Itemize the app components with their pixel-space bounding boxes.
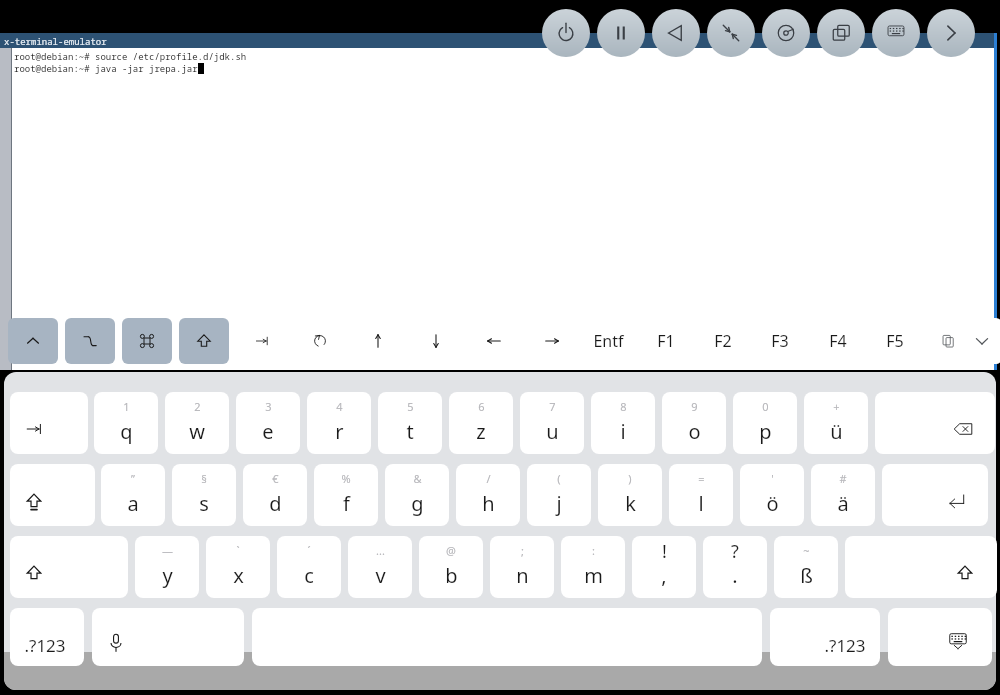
button[interactable]: F3 bbox=[754, 318, 806, 364]
button[interactable]: 0 bbox=[733, 392, 797, 454]
staticText: , bbox=[661, 562, 667, 589]
staticText: 8 bbox=[620, 399, 627, 414]
button[interactable]: % bbox=[314, 464, 378, 526]
button[interactable]: # bbox=[811, 464, 875, 526]
button[interactable]: 1 bbox=[94, 392, 158, 454]
button[interactable]: Hide keyboard bbox=[888, 608, 992, 666]
button[interactable]: Arrow right bbox=[526, 318, 578, 364]
button[interactable]: ( bbox=[527, 464, 591, 526]
button[interactable]: .?123 bbox=[770, 608, 880, 666]
button[interactable]: ” bbox=[101, 464, 165, 526]
button[interactable]: ? bbox=[703, 536, 767, 598]
button[interactable]: Copy bbox=[928, 318, 968, 364]
button[interactable]: = bbox=[669, 464, 733, 526]
button[interactable]: Tab bbox=[10, 392, 88, 454]
button[interactable]: ~ bbox=[774, 536, 838, 598]
button[interactable]: Hide bbox=[962, 318, 1000, 364]
button[interactable]: Command bbox=[122, 318, 172, 364]
button[interactable]: F2 bbox=[697, 318, 749, 364]
button[interactable]: More bbox=[927, 9, 975, 57]
staticText: j bbox=[556, 490, 562, 517]
staticText: a bbox=[127, 490, 139, 517]
staticText: r bbox=[335, 418, 344, 445]
staticText: v bbox=[375, 562, 386, 589]
button[interactable]: Pause bbox=[597, 9, 645, 57]
button[interactable]: Keyboard bbox=[872, 9, 920, 57]
button[interactable]: Shrink bbox=[707, 9, 755, 57]
button[interactable]: 2 bbox=[165, 392, 229, 454]
button[interactable]: 9 bbox=[662, 392, 726, 454]
staticText: ! bbox=[662, 539, 667, 564]
button[interactable]: 8 bbox=[591, 392, 655, 454]
button[interactable]: 6 bbox=[449, 392, 513, 454]
button[interactable]: + bbox=[804, 392, 868, 454]
button[interactable]: Caps lock bbox=[10, 464, 95, 526]
button[interactable]: / bbox=[456, 464, 520, 526]
button[interactable]: ´ bbox=[277, 536, 341, 598]
button[interactable]: Back bbox=[652, 9, 700, 57]
button[interactable]: Backspace bbox=[875, 392, 995, 454]
button[interactable]: 7 bbox=[520, 392, 584, 454]
staticText: z bbox=[476, 418, 486, 445]
button[interactable]: Enter bbox=[882, 464, 988, 526]
button[interactable]: ! bbox=[632, 536, 696, 598]
staticText: ) bbox=[628, 471, 632, 486]
staticText: m bbox=[584, 562, 603, 589]
button[interactable]: F1 bbox=[640, 318, 692, 364]
staticText: + bbox=[833, 399, 840, 414]
button[interactable]: € bbox=[243, 464, 307, 526]
staticText: Entf bbox=[593, 330, 624, 352]
staticText: u bbox=[546, 418, 559, 445]
staticText: root@debian:~# java -jar jrepa.jar bbox=[14, 62, 198, 74]
staticText: w bbox=[189, 418, 205, 445]
button[interactable]: Arrow left bbox=[468, 318, 520, 364]
staticText: g bbox=[411, 490, 424, 517]
button[interactable]: — bbox=[135, 536, 199, 598]
button[interactable]: Arrow up bbox=[352, 318, 404, 364]
button[interactable]: 4 bbox=[307, 392, 371, 454]
staticText: k bbox=[625, 490, 636, 517]
staticText: F4 bbox=[829, 330, 847, 352]
button[interactable]: Tab bbox=[236, 318, 288, 364]
staticText: / bbox=[486, 471, 491, 486]
button[interactable]: Power bbox=[542, 9, 590, 57]
button[interactable]: Windows bbox=[817, 9, 865, 57]
button[interactable]: Voice input bbox=[92, 608, 244, 666]
button[interactable]: ... bbox=[348, 536, 412, 598]
button[interactable]: Undo bbox=[294, 318, 346, 364]
staticText: root@debian:~# source /etc/profile.d/jdk… bbox=[14, 50, 247, 62]
button[interactable]: § bbox=[172, 464, 236, 526]
button[interactable]: 3 bbox=[236, 392, 300, 454]
staticText: F3 bbox=[771, 330, 789, 352]
button[interactable]: .?123 bbox=[10, 608, 84, 666]
button[interactable]: ) bbox=[598, 464, 662, 526]
button[interactable]: Option bbox=[65, 318, 115, 364]
button[interactable]: ` bbox=[206, 536, 270, 598]
button[interactable]: Shift bbox=[845, 536, 997, 598]
button[interactable]: 5 bbox=[378, 392, 442, 454]
button[interactable]: Control bbox=[8, 318, 58, 364]
staticText: ” bbox=[131, 471, 135, 486]
staticText: ß bbox=[800, 562, 813, 589]
button[interactable]: : bbox=[561, 536, 625, 598]
button[interactable]: Shift bbox=[179, 318, 229, 364]
staticText: & bbox=[413, 471, 422, 486]
button[interactable]: F4 bbox=[812, 318, 864, 364]
staticText: ü bbox=[830, 418, 843, 445]
staticText: — bbox=[162, 543, 173, 558]
staticText: : bbox=[592, 543, 595, 558]
button[interactable]: Shift bbox=[10, 536, 128, 598]
button[interactable]: & bbox=[385, 464, 449, 526]
staticText: ; bbox=[521, 543, 524, 558]
button[interactable]: Disc bbox=[762, 9, 810, 57]
staticText: f bbox=[343, 490, 350, 517]
staticText: # bbox=[839, 471, 847, 486]
button[interactable]: @ bbox=[419, 536, 483, 598]
button[interactable]: Entf bbox=[582, 318, 634, 364]
button[interactable]: Arrow down bbox=[410, 318, 462, 364]
button[interactable]: ; bbox=[490, 536, 554, 598]
button[interactable]: F5 bbox=[869, 318, 921, 364]
button[interactable]: ' bbox=[740, 464, 804, 526]
staticText: ö bbox=[766, 490, 779, 517]
